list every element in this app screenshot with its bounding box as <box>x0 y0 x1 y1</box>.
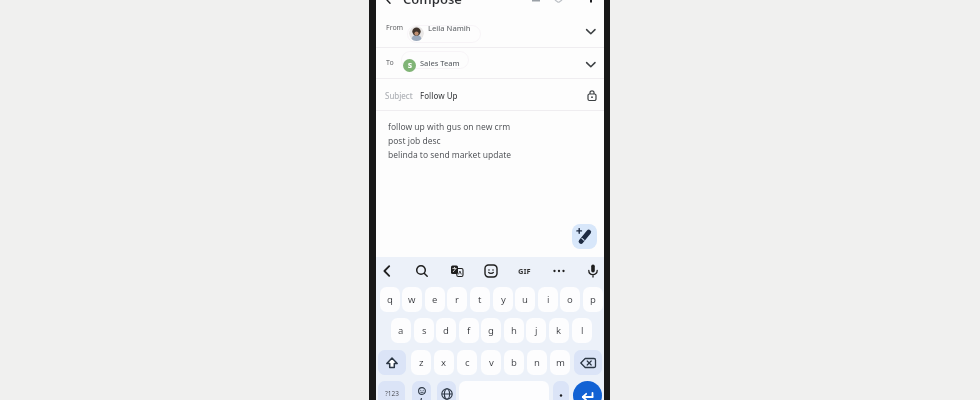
staticText: u <box>522 293 528 306</box>
staticText: Follow Up <box>420 90 458 101</box>
button[interactable]: f <box>459 318 479 343</box>
button[interactable]: d <box>436 318 456 343</box>
button[interactable]: m <box>550 350 570 375</box>
button[interactable]: Subject <box>376 79 604 111</box>
button[interactable]: q <box>380 287 400 312</box>
staticText: Leila Namih <box>428 23 471 33</box>
staticText: d <box>443 324 449 337</box>
button[interactable]: follow up with gus on new crm <box>388 120 512 162</box>
button[interactable] <box>482 262 500 280</box>
button[interactable]: ?123 <box>378 381 405 400</box>
button[interactable]: To <box>376 47 604 79</box>
button[interactable]: w <box>402 287 422 312</box>
staticText: GIF <box>518 266 531 276</box>
button[interactable]: x <box>434 350 454 375</box>
staticText: belinda to send market update <box>388 149 512 161</box>
staticText: ?123 <box>385 389 399 398</box>
staticText: follow up with gus on new crm <box>388 121 511 133</box>
staticText: Subject <box>385 90 413 101</box>
button[interactable]: z <box>411 350 431 375</box>
button[interactable]: r <box>447 287 467 312</box>
staticText: S <box>408 61 412 71</box>
staticText: e <box>432 293 438 306</box>
staticText: a <box>398 324 404 337</box>
button[interactable] <box>378 262 396 280</box>
button[interactable]: j <box>526 318 546 343</box>
button[interactable]: g <box>481 318 501 343</box>
staticText: y <box>501 293 506 306</box>
button[interactable] <box>574 350 602 375</box>
button[interactable] <box>553 381 569 400</box>
staticText: c <box>465 356 470 369</box>
button[interactable]: GIF <box>515 262 534 280</box>
staticText: From <box>386 23 404 33</box>
staticText: n <box>534 356 540 369</box>
button[interactable]: a <box>391 318 411 343</box>
button[interactable]: v <box>481 350 501 375</box>
staticText: m <box>556 356 565 369</box>
button[interactable]: t <box>470 287 490 312</box>
button[interactable]: b <box>504 350 524 375</box>
staticText: Compose <box>403 0 462 8</box>
button[interactable]: e <box>425 287 445 312</box>
button[interactable]: c <box>457 350 477 375</box>
staticText: k <box>556 324 562 337</box>
button[interactable]: n <box>527 350 547 375</box>
staticText: w <box>408 293 416 306</box>
staticText: t <box>478 293 482 306</box>
staticText: z <box>419 356 424 369</box>
button[interactable]: p <box>583 287 603 312</box>
button[interactable] <box>376 0 604 8</box>
button[interactable] <box>413 262 431 280</box>
button[interactable]: y <box>493 287 513 312</box>
staticText: q <box>387 293 393 306</box>
button[interactable]: From <box>376 8 604 47</box>
staticText: p <box>590 293 596 306</box>
button[interactable] <box>378 350 406 375</box>
staticText: l <box>581 324 584 337</box>
button[interactable] <box>437 381 456 400</box>
staticText: f <box>467 324 471 337</box>
button[interactable]: o <box>560 287 580 312</box>
staticText: Sales Team <box>420 58 460 68</box>
button[interactable] <box>573 381 602 400</box>
staticText: s <box>422 324 427 337</box>
staticText: h <box>511 324 517 337</box>
staticText: To <box>386 58 394 68</box>
button[interactable] <box>412 381 431 400</box>
staticText: v <box>489 356 494 369</box>
button[interactable]: h <box>504 318 524 343</box>
staticText: o <box>567 293 573 306</box>
button[interactable] <box>550 262 568 280</box>
staticText: x <box>441 356 447 369</box>
button[interactable]: i <box>538 287 558 312</box>
staticText: b <box>511 356 517 369</box>
button[interactable]: s <box>414 318 434 343</box>
button[interactable] <box>584 262 602 280</box>
button[interactable]: l <box>572 318 592 343</box>
staticText: post job desc <box>388 135 441 147</box>
button[interactable]: u <box>515 287 535 312</box>
staticText: i <box>547 293 550 306</box>
button[interactable] <box>572 224 597 249</box>
staticText: r <box>455 293 459 306</box>
button[interactable]: k <box>549 318 569 343</box>
staticText: g <box>488 324 494 337</box>
button[interactable] <box>448 262 466 280</box>
staticText: j <box>535 324 538 337</box>
